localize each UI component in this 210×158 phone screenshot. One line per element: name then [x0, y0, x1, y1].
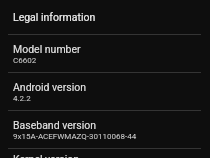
staticText: Kernel version — [13, 153, 80, 158]
button[interactable]: Android version — [0, 77, 210, 114]
staticText: Android version — [13, 81, 86, 93]
staticText: Legal information — [13, 11, 96, 23]
staticText: 9x15A-ACEFWMAZQ-30110068-44 — [13, 132, 210, 141]
button[interactable]: Model number — [0, 39, 210, 76]
staticText: Baseband version — [13, 119, 97, 131]
staticText: 4.2.2 — [13, 94, 210, 103]
staticText: C6602 — [13, 56, 210, 65]
staticText: Model number — [13, 43, 81, 55]
button[interactable]: Kernel version — [0, 150, 210, 158]
button[interactable]: Baseband version — [0, 115, 210, 152]
button[interactable]: Legal information — [0, 0, 210, 34]
